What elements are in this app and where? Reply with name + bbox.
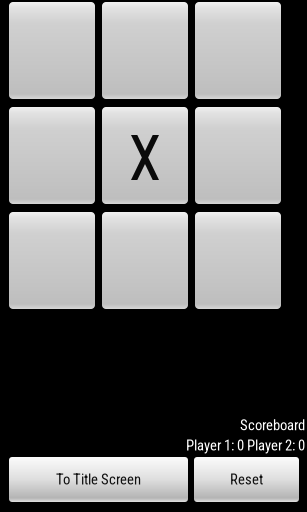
button[interactable]: Empty square [195, 107, 281, 204]
staticText: Player 1: 0 Player 2: 0 [186, 437, 305, 454]
button[interactable]: Empty square [102, 2, 188, 99]
button[interactable]: Reset [194, 457, 299, 502]
staticText: To Title Screen [56, 471, 141, 488]
staticText: Reset [230, 471, 263, 488]
button[interactable]: Empty square [195, 212, 281, 309]
button[interactable]: To Title Screen [9, 457, 188, 502]
button[interactable]: Empty square [9, 2, 95, 99]
staticText: Scoreboard [240, 417, 305, 434]
button[interactable]: Square X [102, 107, 188, 204]
button[interactable]: Empty square [195, 2, 281, 99]
button[interactable]: Empty square [9, 212, 95, 309]
button[interactable]: Empty square [9, 107, 95, 204]
button[interactable]: Empty square [102, 212, 188, 309]
